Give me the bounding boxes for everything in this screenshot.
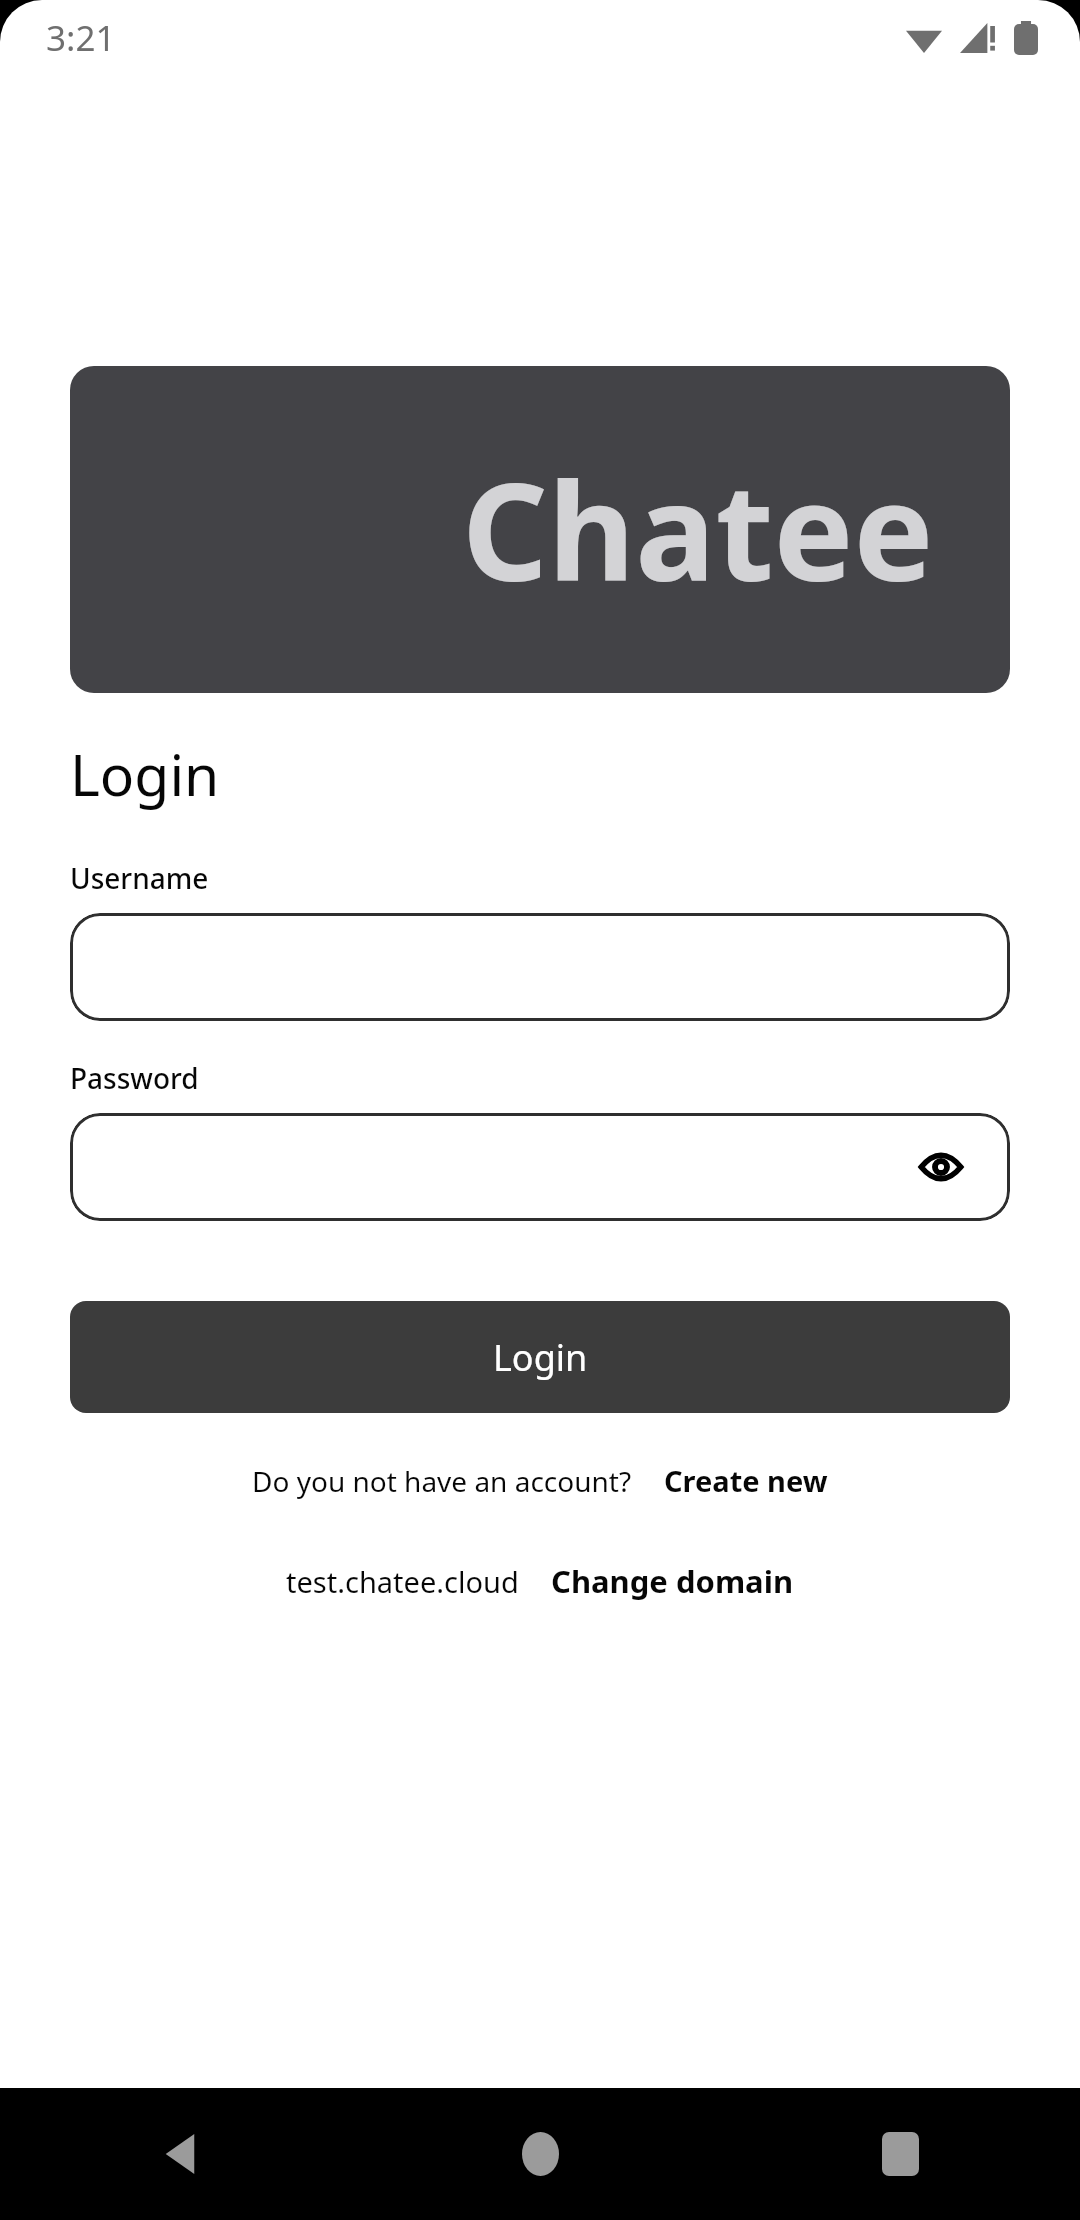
- button[interactable]: Create new: [664, 1461, 828, 1500]
- staticText: Do you not have an account?: [252, 1462, 632, 1500]
- button[interactable]: Recent apps: [720, 2088, 1080, 2220]
- button[interactable]: [70, 913, 1010, 1021]
- staticText: Change domain: [551, 1560, 794, 1602]
- staticText: Username: [70, 859, 209, 897]
- staticText: Chatee: [462, 438, 934, 621]
- button[interactable]: Chatee: [70, 366, 1010, 693]
- staticText: Password: [70, 1059, 199, 1097]
- staticText: Login: [70, 735, 220, 813]
- button[interactable]: Change domain: [551, 1560, 794, 1602]
- button[interactable]: Show password: [70, 1113, 1010, 1221]
- button[interactable]: Show password: [910, 1136, 972, 1198]
- button[interactable]: Back: [0, 2088, 360, 2220]
- button[interactable]: Home: [360, 2088, 720, 2220]
- staticText: Create new: [664, 1461, 828, 1500]
- staticText: 3:21: [46, 14, 116, 62]
- staticText: test.chatee.cloud: [286, 1562, 519, 1601]
- staticText: Login: [493, 1333, 588, 1382]
- button[interactable]: Login: [70, 1301, 1010, 1413]
